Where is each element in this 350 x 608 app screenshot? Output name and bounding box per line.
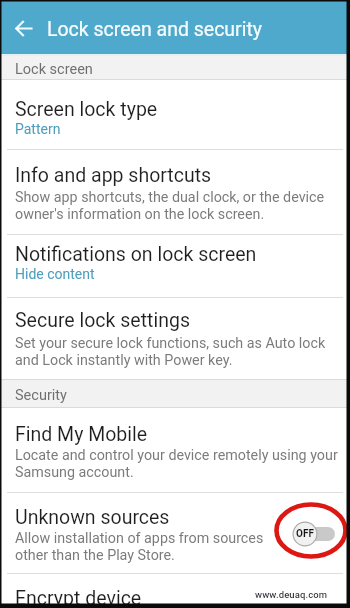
button[interactable] bbox=[6, 14, 40, 42]
staticText: Info and app shortcuts bbox=[15, 164, 212, 187]
staticText: Unknown sources bbox=[15, 506, 170, 529]
staticText: Find My Mobile bbox=[15, 423, 148, 446]
staticText: Lock screen bbox=[15, 61, 93, 78]
button[interactable]: Notifications on lock screen bbox=[0, 235, 350, 297]
staticText: Lock screen and security bbox=[47, 18, 263, 41]
button[interactable]: Info and app shortcuts bbox=[0, 150, 350, 234]
staticText: Security bbox=[15, 387, 67, 404]
button[interactable]: Secure lock settings bbox=[0, 298, 350, 379]
staticText: Show app shortcuts, the dual clock, or t… bbox=[15, 189, 325, 222]
staticText: Secure lock settings bbox=[15, 309, 190, 332]
staticText: Notifications on lock screen bbox=[15, 243, 257, 266]
button[interactable]: Find My Mobile bbox=[0, 408, 350, 492]
staticText: Hide content bbox=[15, 266, 95, 282]
staticText: OFF bbox=[296, 528, 314, 540]
button[interactable]: Screen lock type bbox=[0, 80, 350, 149]
staticText: Pattern bbox=[15, 121, 61, 137]
staticText: Encrypt device bbox=[15, 587, 142, 608]
staticText: Locate and control your device remotely … bbox=[15, 447, 338, 480]
staticText: Allow installation of apps from sources … bbox=[15, 530, 264, 563]
staticText: Set your secure lock functions, such as … bbox=[15, 335, 326, 368]
staticText: www.deuaq.com bbox=[255, 589, 328, 600]
button[interactable]: Encrypt device bbox=[0, 574, 350, 608]
button[interactable]: Unknown sources bbox=[0, 493, 350, 573]
staticText: Screen lock type bbox=[15, 98, 158, 121]
